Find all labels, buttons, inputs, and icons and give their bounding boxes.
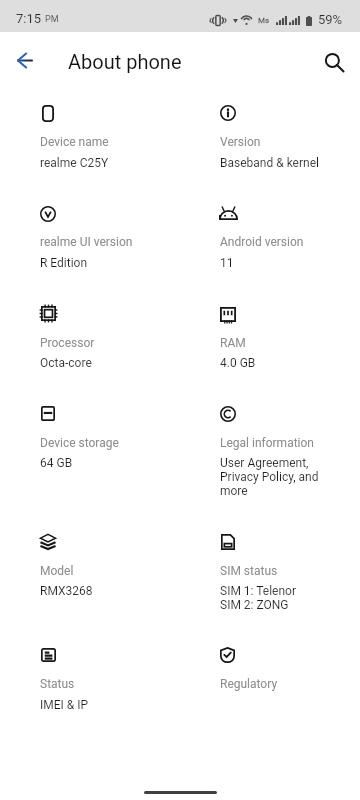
staticText: PM (45, 14, 59, 25)
button[interactable] (22, 392, 190, 480)
staticText: realme UI version (40, 235, 133, 249)
button[interactable] (22, 91, 190, 179)
button[interactable] (22, 520, 190, 608)
staticText: more (220, 484, 248, 498)
button[interactable] (202, 392, 360, 480)
staticText: 11 (220, 256, 234, 270)
staticText: SIM status (220, 564, 278, 578)
button[interactable] (22, 292, 190, 380)
staticText: IMEI & IP (40, 698, 89, 712)
button[interactable]: Search (314, 42, 354, 82)
button[interactable] (202, 633, 360, 721)
button[interactable] (22, 193, 190, 281)
staticText: Version (220, 135, 261, 149)
staticText: 64 GB (40, 456, 73, 470)
staticText: Device name (40, 135, 109, 149)
staticText: SIM 1: Telenor (220, 584, 296, 598)
staticText: Legal information (220, 436, 314, 450)
button[interactable] (202, 292, 360, 380)
button[interactable] (202, 91, 360, 179)
button[interactable] (22, 633, 190, 721)
button[interactable]: Back (5, 40, 45, 80)
staticText: User Agreement, (220, 456, 309, 470)
staticText: About phone (68, 50, 182, 73)
staticText: SIM 2: ZONG (220, 598, 289, 612)
staticText: R Edition (40, 256, 88, 270)
staticText: 7:15 (16, 11, 42, 26)
staticText: RAM (220, 336, 246, 350)
staticText: RMX3268 (40, 584, 93, 598)
staticText: Status (40, 677, 75, 691)
staticText: Model (40, 564, 74, 578)
staticText: Octa-core (40, 356, 92, 370)
staticText: Android version (220, 235, 304, 249)
staticText: Device storage (40, 436, 119, 450)
staticText: Privacy Policy, and (220, 470, 319, 484)
button[interactable] (202, 520, 360, 608)
staticText: Processor (40, 336, 95, 350)
staticText: 4.0 GB (220, 356, 256, 370)
button[interactable] (202, 193, 360, 281)
staticText: realme C25Y (40, 156, 109, 170)
staticText: 59% (318, 12, 343, 27)
staticText: Regulatory (220, 677, 278, 691)
staticText: Baseband & kernel (220, 156, 319, 170)
staticText: Ms (258, 16, 270, 25)
